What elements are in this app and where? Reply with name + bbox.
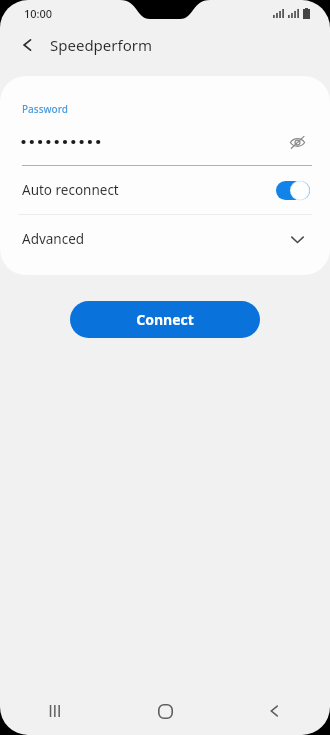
staticText: Auto reconnect xyxy=(22,181,276,199)
button[interactable]: Auto reconnect xyxy=(0,166,330,214)
staticText: Password xyxy=(22,102,68,116)
other: Expand advanced xyxy=(286,228,308,250)
staticText: 10:00 xyxy=(24,6,53,21)
staticText: Advanced xyxy=(22,230,286,248)
button[interactable]: Back xyxy=(220,687,330,735)
button[interactable]: Connect xyxy=(70,301,260,338)
staticText: Connect xyxy=(136,310,194,329)
button[interactable]: Back xyxy=(10,27,46,63)
button[interactable]: Auto reconnect toggle xyxy=(276,181,310,200)
button[interactable]: Advanced xyxy=(0,215,330,263)
button[interactable]: Recent apps xyxy=(0,687,110,735)
button[interactable]: Home xyxy=(110,687,220,735)
button[interactable]: Show password xyxy=(282,127,312,157)
button[interactable]: Password xyxy=(0,76,330,166)
staticText: Speedperform xyxy=(50,35,152,55)
